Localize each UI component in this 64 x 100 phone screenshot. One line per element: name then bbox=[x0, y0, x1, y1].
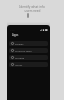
staticText: Display bbox=[15, 42, 24, 45]
staticText: Identify what info bbox=[19, 5, 45, 9]
staticText: Apps bbox=[12, 33, 19, 37]
staticText: users need bbox=[24, 9, 41, 13]
staticText: Storage bbox=[15, 56, 25, 59]
button[interactable]: About bbox=[9, 62, 48, 67]
staticText: 9:30 bbox=[10, 29, 15, 31]
button[interactable]: Display bbox=[9, 41, 48, 46]
staticText: About bbox=[15, 63, 23, 66]
button[interactable]: Storage bbox=[9, 55, 48, 60]
button[interactable]: Sound & vibes bbox=[9, 48, 48, 53]
staticText: Sound & vibes bbox=[15, 49, 32, 52]
other: Phone preview bbox=[27, 13, 29, 18]
